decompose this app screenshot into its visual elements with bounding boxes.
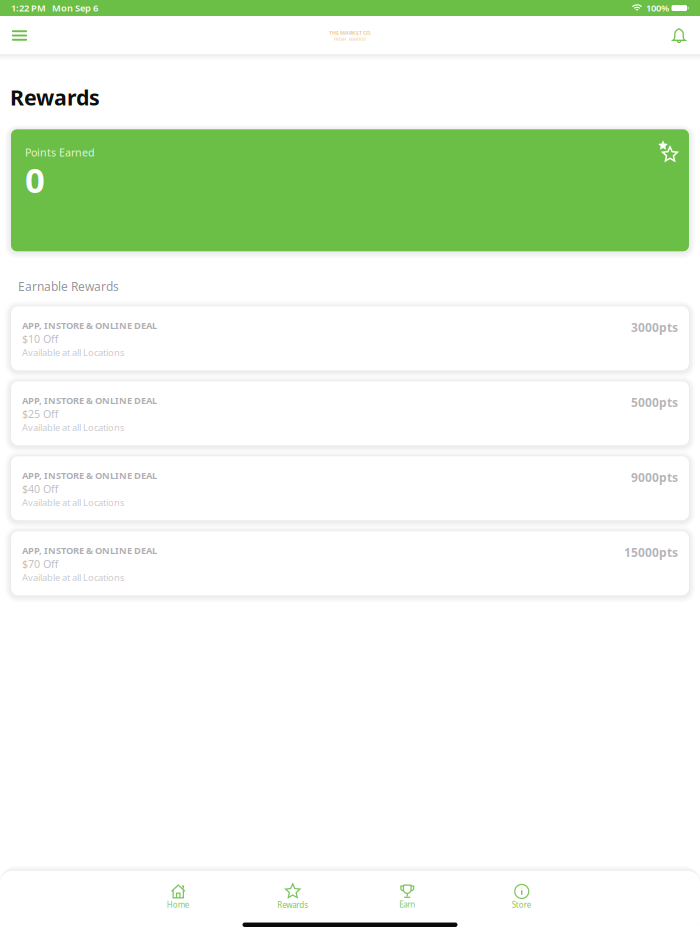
staticText: 3000pts: [631, 319, 678, 335]
button[interactable]: Earn: [350, 879, 464, 915]
staticText: Store: [512, 899, 532, 910]
button[interactable]: APP, INSTORE & ONLINE DEAL: [11, 381, 689, 445]
staticText: APP, INSTORE & ONLINE DEAL: [22, 469, 157, 482]
staticText: 5000pts: [631, 394, 678, 410]
button[interactable]: APP, INSTORE & ONLINE DEAL: [11, 306, 689, 370]
button[interactable]: APP, INSTORE & ONLINE DEAL: [11, 456, 689, 520]
staticText: Earn: [399, 899, 415, 910]
staticText: THE MARKET CO.: [329, 29, 371, 36]
staticText: Available at all Locations: [22, 571, 124, 584]
button[interactable]: Notifications: [665, 16, 693, 54]
staticText: $25 Off: [22, 407, 58, 421]
staticText: $40 Off: [22, 482, 58, 496]
button[interactable]: APP, INSTORE & ONLINE DEAL: [11, 531, 689, 595]
staticText: $70 Off: [22, 557, 58, 571]
staticText: Available at all Locations: [22, 346, 124, 359]
staticText: $10 Off: [22, 332, 58, 346]
staticText: Available at all Locations: [22, 421, 124, 434]
staticText: Mon Sep 6: [46, 2, 98, 14]
staticText: 15000pts: [624, 544, 678, 560]
staticText: Earnable Rewards: [18, 278, 119, 294]
staticText: APP, INSTORE & ONLINE DEAL: [22, 394, 157, 407]
staticText: 1:22 PM: [11, 2, 46, 14]
staticText: Points Earned: [25, 145, 95, 159]
staticText: Rewards: [277, 899, 308, 910]
staticText: APP, INSTORE & ONLINE DEAL: [22, 319, 157, 332]
button[interactable]: Menu: [4, 16, 35, 54]
staticText: 0: [25, 156, 45, 202]
staticText: Available at all Locations: [22, 496, 124, 509]
staticText: FRESH MARKET: [334, 37, 366, 42]
button[interactable]: Home: [121, 879, 235, 915]
button[interactable]: Rewards: [235, 879, 350, 915]
staticText: Rewards: [10, 83, 100, 111]
staticText: 9000pts: [631, 469, 678, 485]
staticText: 100%: [642, 2, 669, 14]
staticText: APP, INSTORE & ONLINE DEAL: [22, 544, 157, 557]
staticText: Home: [167, 899, 190, 910]
button[interactable]: Store: [464, 879, 579, 915]
